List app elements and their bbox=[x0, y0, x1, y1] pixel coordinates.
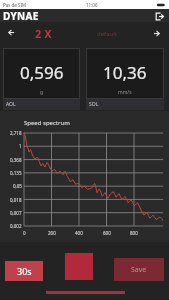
staticText: 11:06 bbox=[86, 2, 98, 8]
staticText: 0 bbox=[23, 230, 26, 236]
staticText: 0,135 bbox=[10, 170, 22, 176]
staticText: default bbox=[97, 30, 117, 38]
staticText: 0,368 bbox=[10, 157, 22, 163]
staticText: 0,002 bbox=[10, 223, 22, 229]
staticText: g bbox=[40, 89, 44, 96]
button[interactable]: Log out bbox=[153, 10, 165, 22]
staticText: 2 X bbox=[35, 26, 52, 41]
button[interactable]: Next bbox=[146, 24, 167, 43]
staticText: 200 bbox=[48, 230, 56, 236]
staticText: Pas de SIM bbox=[3, 2, 27, 8]
staticText: 600 bbox=[103, 230, 111, 236]
button[interactable]: 30s bbox=[5, 261, 43, 281]
button[interactable]: 2 X bbox=[23, 25, 63, 41]
button[interactable]: Previous bbox=[1, 23, 22, 42]
staticText: SOL bbox=[89, 101, 99, 108]
staticText: 0,007 bbox=[10, 210, 22, 216]
staticText: 1 bbox=[19, 143, 22, 149]
button[interactable]: 0,596 bbox=[3, 48, 80, 99]
staticText: 400 bbox=[75, 230, 83, 236]
staticText: AOL bbox=[6, 101, 16, 108]
button[interactable]: 10,36 bbox=[86, 48, 164, 99]
staticText: mm/s bbox=[118, 89, 132, 96]
staticText: 800 bbox=[130, 230, 138, 236]
staticText: Save bbox=[131, 265, 147, 275]
staticText: 10,36 bbox=[103, 61, 147, 84]
button[interactable]: Save bbox=[114, 258, 164, 281]
staticText: 0,596 bbox=[20, 61, 64, 84]
staticText: Speed spectrum bbox=[24, 119, 70, 127]
staticText: 0,05 bbox=[13, 183, 22, 189]
button[interactable]: default bbox=[86, 27, 127, 40]
staticText: 2,718 bbox=[10, 130, 22, 136]
staticText: DYNAE bbox=[3, 9, 39, 22]
staticText: 0,018 bbox=[10, 197, 22, 203]
staticText: 30s bbox=[17, 265, 32, 277]
